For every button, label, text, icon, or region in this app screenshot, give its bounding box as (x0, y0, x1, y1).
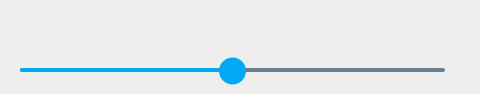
button[interactable]: Slider (20, 56, 445, 83)
